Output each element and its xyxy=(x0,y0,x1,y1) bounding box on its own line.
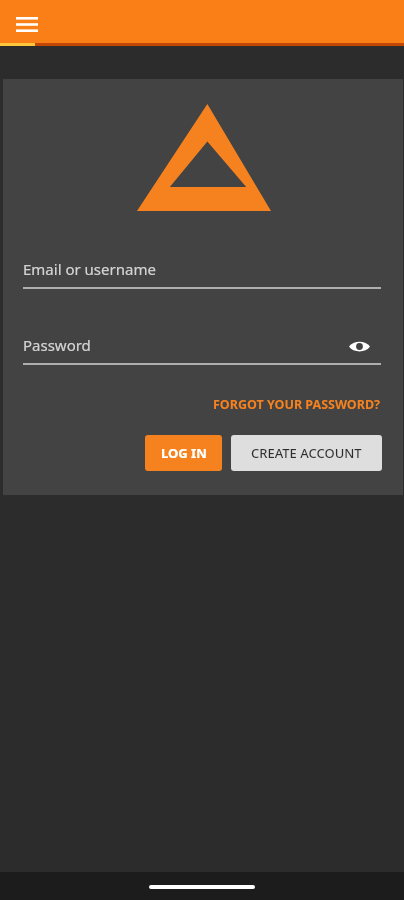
staticText: LOG IN xyxy=(161,444,207,462)
button[interactable]: LOG IN xyxy=(145,435,222,471)
staticText: Password xyxy=(23,335,91,355)
button[interactable]: CREATE ACCOUNT xyxy=(231,435,382,471)
button[interactable]: FORGOT YOUR PASSWORD? xyxy=(209,393,385,415)
button[interactable]: Open navigation menu xyxy=(5,2,49,46)
button[interactable]: Show password xyxy=(337,324,381,368)
staticText: Email or username xyxy=(23,259,156,279)
staticText: FORGOT YOUR PASSWORD? xyxy=(213,396,381,413)
staticText: CREATE ACCOUNT xyxy=(251,444,362,462)
